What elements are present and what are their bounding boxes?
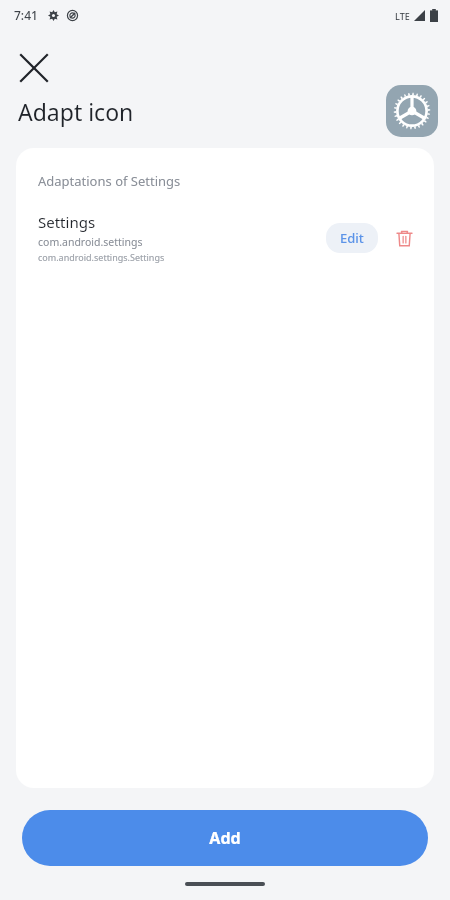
staticText: Edit: [340, 229, 364, 247]
staticText: com.android.settings: [38, 235, 143, 249]
staticText: Adaptations of Settings: [38, 172, 181, 190]
staticText: LTE: [395, 10, 410, 22]
staticText: Adapt icon: [18, 96, 134, 127]
button[interactable]: Delete: [386, 220, 422, 256]
staticText: Add: [209, 827, 241, 849]
button[interactable]: Edit: [326, 223, 378, 253]
button[interactable]: Close: [10, 44, 58, 92]
staticText: Settings: [38, 212, 96, 232]
staticText: com.android.settings.Settings: [38, 251, 165, 263]
button[interactable]: App icon preview: [386, 85, 438, 137]
button[interactable]: Add: [22, 810, 428, 866]
staticText: 7:41: [14, 7, 38, 23]
